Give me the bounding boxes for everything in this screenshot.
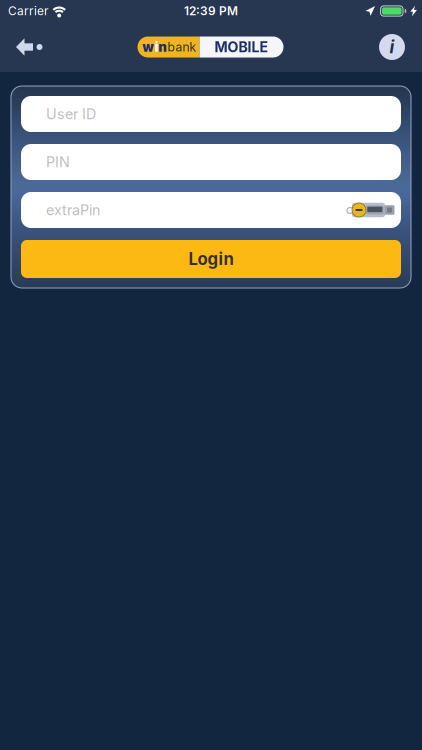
staticText: n — [158, 39, 167, 55]
staticText: i — [389, 36, 394, 57]
staticText: MOBILE — [214, 38, 268, 56]
button[interactable]: Information — [343, 22, 422, 72]
staticText: User ID — [46, 105, 96, 123]
staticText: Carrier — [8, 4, 48, 18]
button[interactable]: Back — [0, 22, 78, 72]
staticText: Login — [188, 249, 233, 269]
staticText: extraPin — [46, 201, 100, 219]
staticText: i — [154, 39, 158, 55]
staticText: PIN — [46, 153, 70, 171]
staticText: w — [142, 39, 154, 55]
staticText: 12:39 PM — [184, 4, 238, 18]
staticText: bank — [167, 39, 196, 54]
button[interactable]: Login — [21, 240, 401, 278]
